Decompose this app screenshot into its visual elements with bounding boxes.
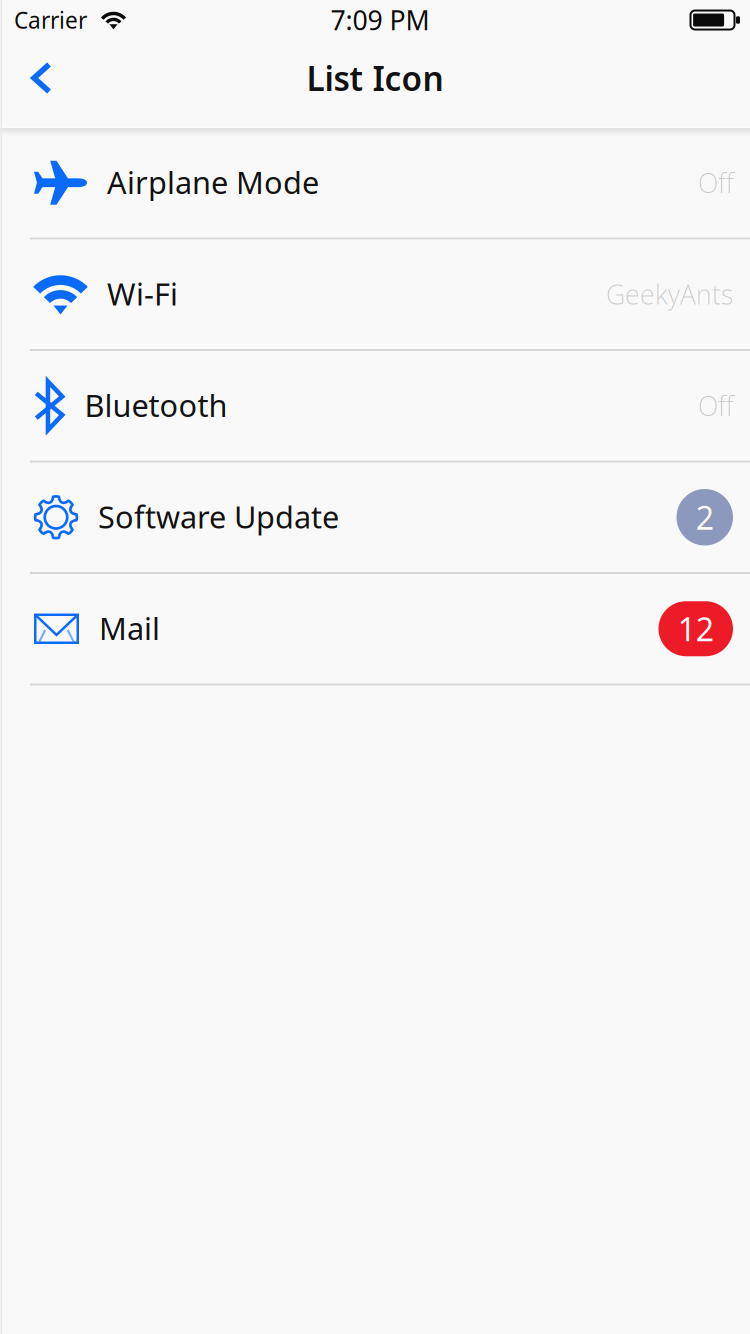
staticText: List Icon — [306, 56, 443, 100]
staticText: Off — [698, 388, 733, 423]
staticText: 7:09 PM — [330, 2, 429, 38]
button[interactable]: Wi-Fi — [0, 239, 750, 351]
staticText: Off — [698, 165, 733, 200]
staticText: Carrier — [14, 5, 87, 35]
button[interactable]: Back — [0, 44, 75, 123]
staticText: 2 — [696, 496, 714, 538]
button[interactable]: Bluetooth — [0, 351, 750, 462]
staticText: 12 — [678, 607, 714, 650]
staticText: Bluetooth — [84, 385, 227, 425]
staticText: Wi-Fi — [107, 273, 178, 314]
button[interactable]: Airplane Mode — [0, 128, 750, 239]
staticText: Mail — [99, 608, 160, 648]
staticText: Software Update — [98, 496, 339, 537]
staticText: Airplane Mode — [107, 162, 319, 202]
button[interactable]: Mail — [0, 574, 750, 685]
button[interactable]: Software Update — [0, 462, 750, 574]
staticText: GeekyAnts — [606, 276, 733, 312]
